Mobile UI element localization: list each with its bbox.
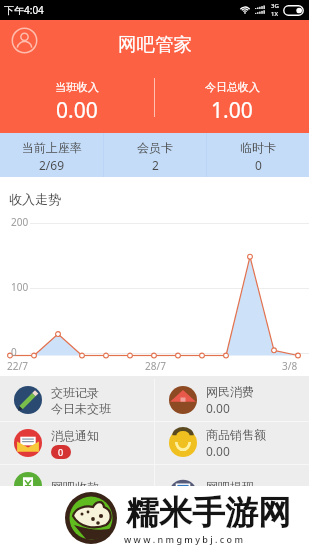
staticText: 交班记录: [51, 385, 99, 400]
staticText: 0: [255, 157, 262, 173]
staticText: 2: [152, 157, 159, 173]
button[interactable]: 商品销售额: [155, 422, 309, 464]
staticText: 当班收入: [55, 80, 99, 94]
staticText: 今日未交班: [51, 401, 111, 416]
staticText: 网吧收款: [51, 479, 99, 494]
staticText: w w w . n m g m y b j . c o m: [124, 533, 243, 545]
staticText: 下午4:04: [4, 3, 44, 17]
staticText: 糯米手游网: [126, 492, 291, 534]
button[interactable]: 临时卡: [207, 133, 309, 177]
button[interactable]: 网吧收款: [0, 465, 154, 507]
staticText: 1X: [271, 10, 278, 18]
staticText: 22/7: [7, 359, 28, 373]
staticText: 0: [58, 446, 64, 458]
staticText: 0.00: [206, 400, 230, 416]
button[interactable]: 网吧提现: [155, 465, 309, 507]
staticText: 3/8: [282, 359, 298, 373]
button[interactable]: 消息通知: [0, 422, 154, 464]
staticText: 100: [11, 280, 29, 294]
staticText: 28/7: [145, 359, 166, 373]
button[interactable]: 当班收入: [0, 80, 154, 125]
staticText: 临时卡: [240, 140, 276, 155]
staticText: 今日总收入: [205, 80, 260, 94]
staticText: 网吧管家: [118, 33, 192, 56]
staticText: 当前上座率: [22, 140, 82, 155]
staticText: 0.00: [206, 443, 230, 459]
staticText: 2/69: [39, 157, 65, 173]
staticText: 网吧提现: [206, 479, 254, 494]
staticText: 网民消费: [206, 384, 254, 399]
staticText: 3G: [271, 2, 279, 10]
button[interactable]: 网民消费: [155, 379, 309, 421]
button[interactable]: 会员卡: [104, 133, 206, 177]
staticText: 收入走势: [9, 191, 61, 207]
staticText: 会员卡: [137, 140, 173, 155]
staticText: 200: [11, 215, 29, 229]
button[interactable]: 当前上座率: [0, 133, 103, 177]
button[interactable]: 交班记录: [0, 379, 154, 421]
staticText: 1.00: [211, 96, 253, 125]
staticText: 消息通知: [51, 428, 99, 443]
button[interactable]: 今日总收入: [155, 80, 309, 125]
staticText: 商品销售额: [206, 427, 266, 442]
staticText: 0: [11, 345, 17, 359]
staticText: 0.00: [56, 96, 98, 125]
button[interactable]: Profile: [9, 25, 40, 56]
